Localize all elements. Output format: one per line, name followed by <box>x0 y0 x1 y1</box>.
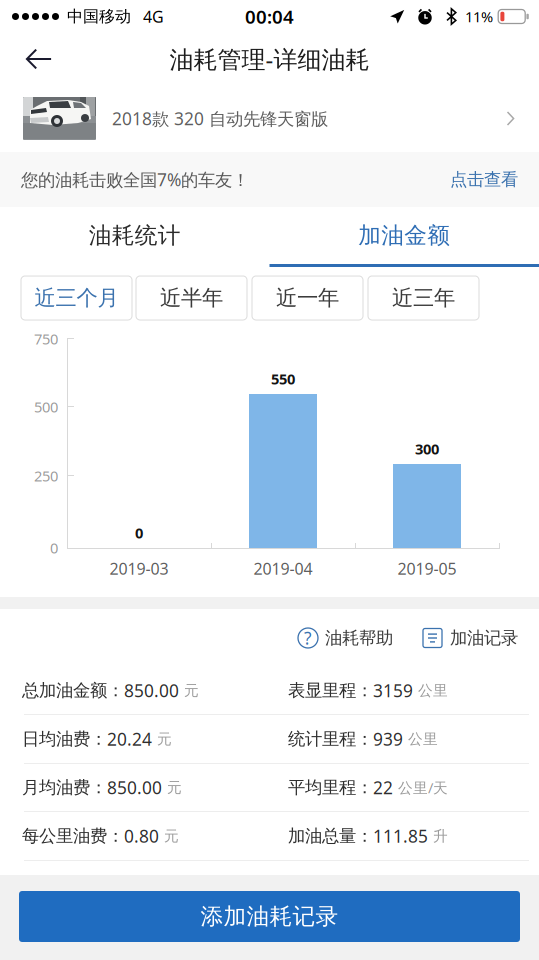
staticText: 总加油金额： <box>22 680 124 701</box>
staticText: 近三年 <box>392 285 455 311</box>
staticText: 元 <box>157 730 172 748</box>
staticText: 22 <box>373 776 398 799</box>
button[interactable]: 近一年 <box>252 276 363 320</box>
staticText: 加油记录 <box>450 627 518 649</box>
staticText: 中国移动 <box>67 7 131 26</box>
staticText: 850.00 <box>124 679 184 702</box>
staticText: 2019-04 <box>253 558 312 579</box>
staticText: 元 <box>184 681 199 699</box>
staticText: 元 <box>164 827 179 845</box>
button[interactable]: 近三个月 <box>21 276 132 320</box>
staticText: 表显里程： <box>288 680 373 701</box>
staticText: 0 <box>135 523 143 542</box>
button[interactable]: 返回 <box>9 33 69 85</box>
button[interactable]: ? <box>298 627 393 649</box>
staticText: 2019-05 <box>397 558 456 579</box>
button[interactable]: 加油金额 <box>269 207 539 267</box>
staticText: 每公里油费： <box>22 825 124 847</box>
staticText: 0 <box>50 538 58 557</box>
staticText: 添加油耗记录 <box>200 903 338 930</box>
button[interactable]: 近三年 <box>368 276 479 320</box>
staticText: 111.85 <box>373 824 433 847</box>
staticText: 4G <box>143 6 164 27</box>
button[interactable]: 近半年 <box>136 276 247 320</box>
staticText: 近三个月 <box>34 285 118 311</box>
staticText: 公里/天 <box>398 778 448 797</box>
staticText: 300 <box>415 439 439 458</box>
button[interactable]: 点击查看 <box>450 169 518 190</box>
staticText: 平均里程： <box>288 777 373 798</box>
staticText: ? <box>304 626 312 649</box>
staticText: 550 <box>271 369 295 388</box>
staticText: 油耗管理-详细油耗 <box>169 43 369 75</box>
staticText: 0.80 <box>124 824 164 847</box>
staticText: 统计里程： <box>288 728 373 750</box>
staticText: 近一年 <box>276 285 339 311</box>
staticText: 00:04 <box>245 4 294 29</box>
staticText: 点击查看 <box>450 169 518 190</box>
staticText: 您的油耗击败全国7%的车友！ <box>21 168 249 191</box>
staticText: 公里 <box>418 681 448 699</box>
staticText: 日均油费： <box>22 728 107 750</box>
staticText: 升 <box>433 827 448 845</box>
staticText: 250 <box>34 466 58 485</box>
button[interactable]: 油耗统计 <box>0 207 269 267</box>
staticText: 500 <box>34 397 58 416</box>
button[interactable]: 加油记录 <box>423 627 518 649</box>
staticText: 2019-03 <box>109 558 168 579</box>
staticText: 11% <box>465 7 493 26</box>
staticText: 3159 <box>373 679 418 702</box>
staticText: 750 <box>34 329 58 348</box>
staticText: 939 <box>373 727 408 750</box>
staticText: 2018款 320 自动先锋天窗版 <box>112 107 328 130</box>
staticText: 850.00 <box>107 776 167 799</box>
staticText: 公里 <box>408 730 438 748</box>
staticText: 月均油费： <box>22 777 107 798</box>
staticText: 油耗统计 <box>89 222 181 249</box>
staticText: 元 <box>167 778 182 796</box>
staticText: 加油总量： <box>288 825 373 847</box>
staticText: 20.24 <box>107 727 157 750</box>
staticText: 加油金额 <box>358 222 450 249</box>
staticText: 近半年 <box>160 285 223 311</box>
staticText: 油耗帮助 <box>325 627 393 649</box>
button[interactable]: 添加油耗记录 <box>19 891 520 942</box>
button[interactable]: 2018款 320 自动先锋天窗版 <box>0 85 539 152</box>
